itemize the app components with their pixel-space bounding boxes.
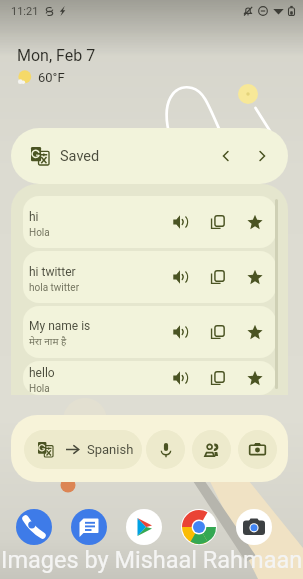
button[interactable]: Unsave <box>242 209 268 235</box>
button[interactable]: Unsave <box>242 365 268 391</box>
staticText: hello <box>29 366 55 380</box>
button[interactable]: hi <box>23 196 276 248</box>
button[interactable]: Copy <box>205 209 231 235</box>
button[interactable]: Camera translate <box>238 430 277 469</box>
button[interactable]: Listen <box>167 209 193 235</box>
button[interactable]: Listen <box>167 319 193 345</box>
staticText: Images by Mishaal Rahmaan <box>1 546 303 574</box>
staticText: Hola <box>29 383 50 395</box>
button[interactable]: Voice input <box>146 430 185 469</box>
button[interactable]: Listen <box>167 264 193 290</box>
staticText: hi <box>29 210 39 224</box>
button[interactable]: Next <box>247 141 277 171</box>
staticText: Spanish <box>87 442 134 457</box>
staticText: 11:21 <box>11 5 39 18</box>
staticText: hi twitter <box>29 265 76 279</box>
button[interactable]: Previous <box>211 141 241 171</box>
staticText: Mon, Feb 7 <box>17 46 96 65</box>
staticText: hola twitter <box>29 282 80 294</box>
button[interactable]: Copy <box>205 264 231 290</box>
button[interactable]: Copy <box>205 365 231 391</box>
button[interactable]: My name is <box>23 306 276 358</box>
staticText: 60°F <box>38 70 65 85</box>
button[interactable]: hello <box>23 361 276 395</box>
button[interactable]: Listen <box>167 365 193 391</box>
button[interactable]: Copy <box>205 319 231 345</box>
staticText: मेरा नाम है <box>29 336 67 349</box>
button[interactable]: hi twitter <box>23 251 276 303</box>
button[interactable]: Unsave <box>242 264 268 290</box>
staticText: Saved <box>60 148 100 165</box>
button[interactable]: Saved <box>11 128 288 184</box>
button[interactable]: Conversation <box>192 430 231 469</box>
staticText: Hola <box>29 227 50 239</box>
button[interactable]: Unsave <box>242 319 268 345</box>
button[interactable]: Spanish <box>24 430 142 469</box>
staticText: My name is <box>29 319 91 333</box>
